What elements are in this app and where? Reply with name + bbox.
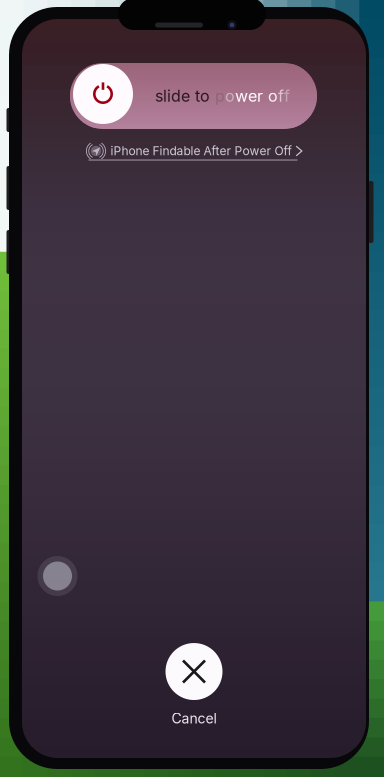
staticText: o bbox=[225, 86, 235, 106]
button[interactable]: iPhone Findable After Power Off bbox=[85, 143, 302, 160]
button[interactable]: slide to bbox=[70, 63, 317, 129]
staticText: o bbox=[263, 86, 278, 106]
staticText: slide to bbox=[155, 86, 215, 106]
staticText: iPhone Findable After Power Off bbox=[110, 144, 291, 158]
staticText: wer bbox=[235, 86, 263, 106]
staticText: f bbox=[284, 86, 290, 106]
staticText: Cancel bbox=[171, 710, 216, 727]
button[interactable]: Cancel bbox=[165, 643, 222, 727]
staticText: f bbox=[278, 86, 284, 106]
staticText: p bbox=[215, 86, 225, 106]
